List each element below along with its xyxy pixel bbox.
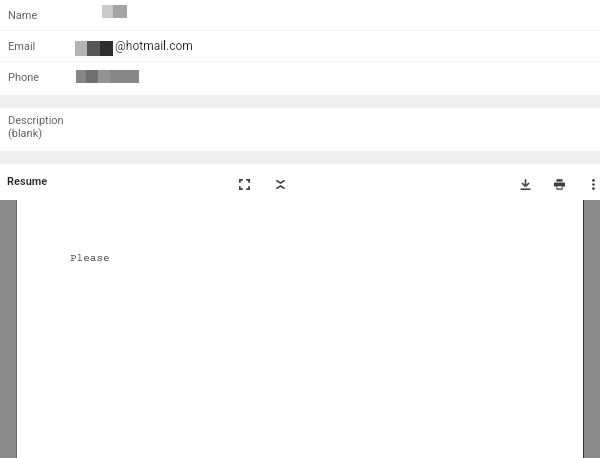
staticText: @hotmail.com	[115, 39, 193, 53]
button[interactable]: Resume document page	[17, 200, 583, 458]
button[interactable]: Description	[0, 108, 600, 151]
staticText: Email	[8, 40, 36, 53]
button[interactable]: Email	[0, 31, 600, 61]
button[interactable]: Download	[511, 170, 539, 198]
button[interactable]: More options	[582, 173, 600, 196]
button[interactable]: Print	[545, 170, 573, 198]
staticText: Phone	[8, 71, 40, 84]
staticText: Description	[8, 114, 64, 127]
button[interactable]: Fit to width	[266, 170, 294, 198]
staticText: Please	[70, 252, 110, 264]
button[interactable]: Name	[0, 0, 600, 30]
button[interactable]: Phone	[0, 62, 600, 92]
staticText: (blank)	[8, 127, 43, 140]
button[interactable]: Fit to screen	[230, 170, 258, 198]
staticText: Name	[8, 9, 38, 22]
staticText: Resume	[7, 175, 48, 188]
